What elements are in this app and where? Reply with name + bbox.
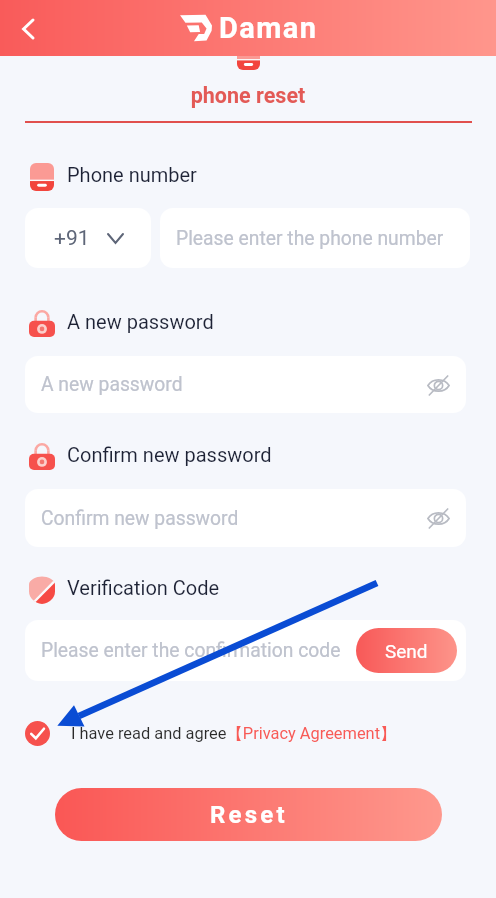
staticText: Reset — [210, 801, 288, 829]
staticText: Please enter the phone number — [176, 227, 444, 250]
button[interactable]: Please enter the phone number — [160, 208, 470, 268]
staticText: phone reset — [0, 83, 496, 108]
button[interactable]: Confirm new password — [25, 489, 466, 547]
staticText: Confirm new password — [41, 507, 239, 530]
button[interactable]: +91 — [25, 208, 151, 268]
staticText: Verification Code — [67, 576, 220, 599]
button[interactable]: Show password — [425, 372, 451, 398]
staticText: Confirm new password — [67, 443, 272, 466]
staticText: Please enter the confirmation code — [41, 639, 341, 662]
staticText: Send — [385, 640, 428, 662]
staticText: A new password — [41, 373, 183, 396]
button[interactable]: Send — [356, 628, 457, 673]
button[interactable]: Back — [0, 1, 55, 56]
staticText: Daman — [219, 11, 318, 45]
staticText: +91 — [54, 226, 90, 251]
staticText: Phone number — [67, 163, 197, 186]
button[interactable]: Show password — [425, 505, 451, 531]
button[interactable]: Reset — [55, 788, 442, 841]
staticText: I have read and agree【Privacy Agreement】 — [71, 723, 397, 744]
button[interactable]: I have read and agree【Privacy Agreement】 — [25, 719, 397, 747]
button[interactable]: A new password — [25, 356, 466, 413]
staticText: A new password — [67, 310, 214, 333]
